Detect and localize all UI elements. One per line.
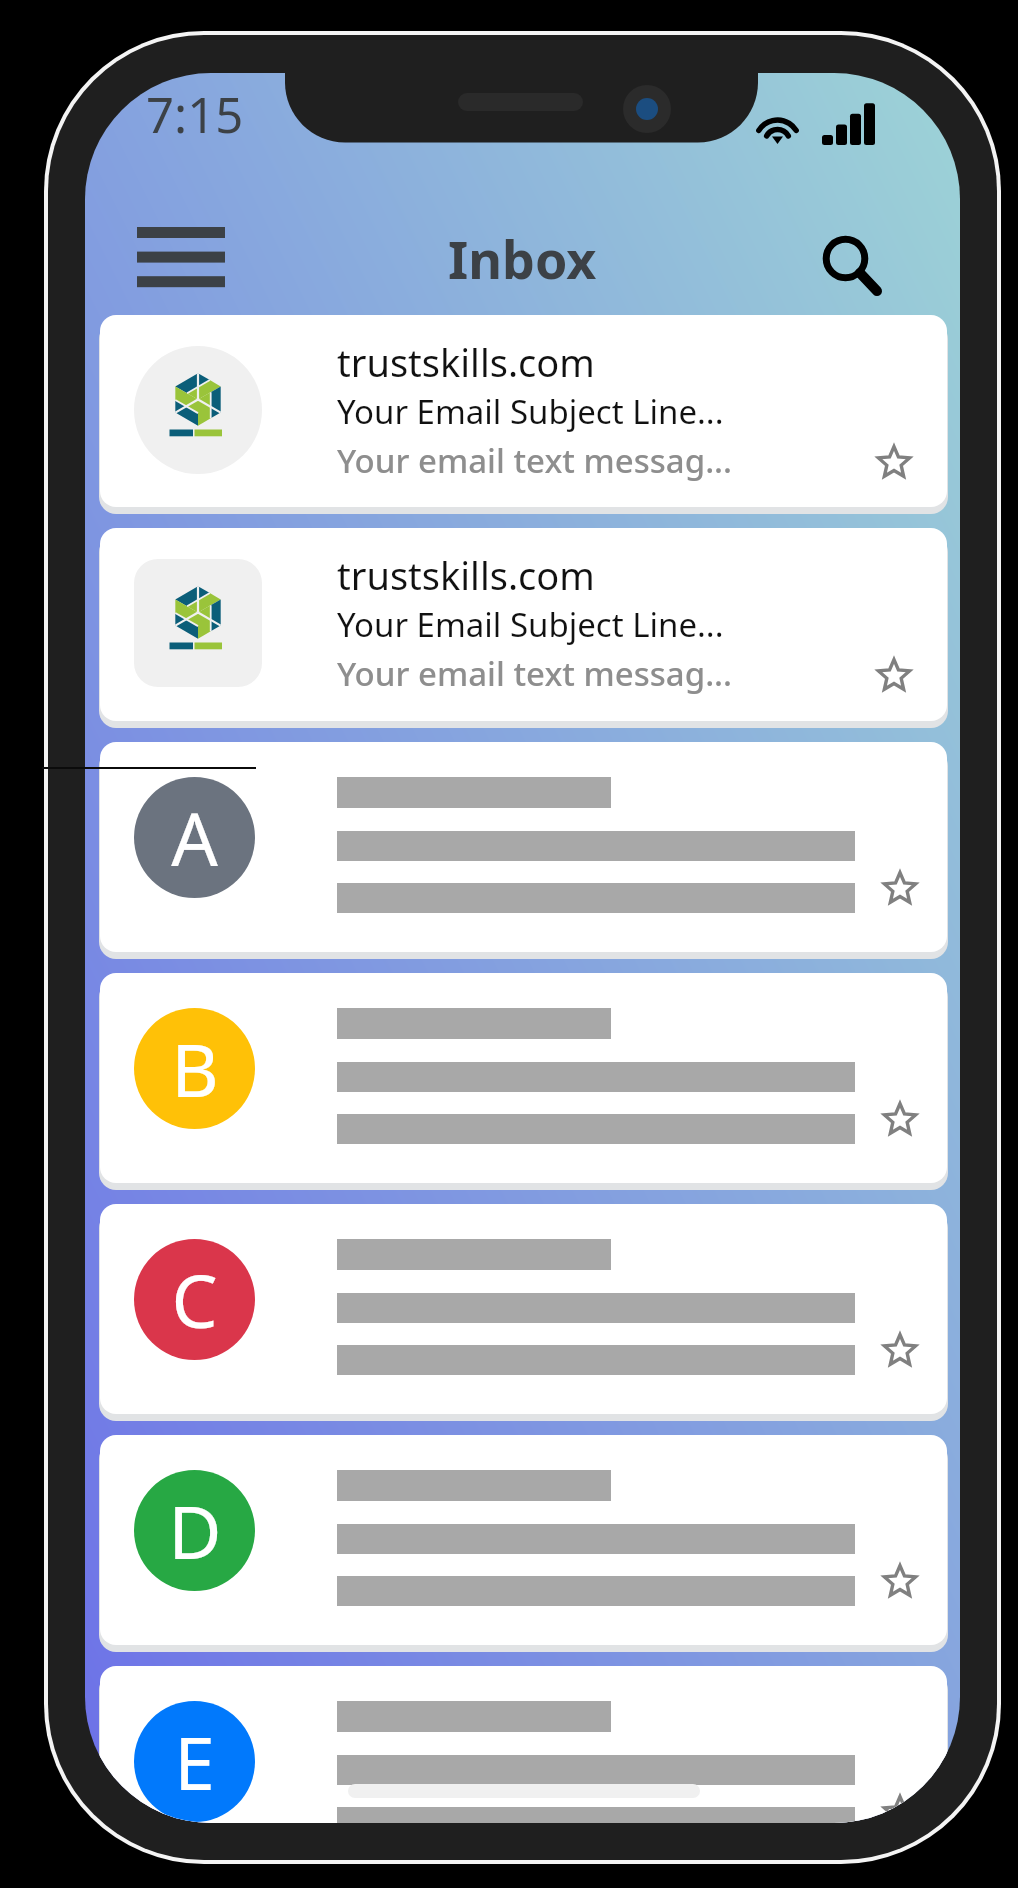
button[interactable]: D — [100, 1435, 947, 1645]
staticText: Inbox — [448, 223, 597, 294]
staticText: E — [174, 1712, 215, 1811]
button[interactable]: Star — [869, 1550, 931, 1612]
staticText: Your email text messag... — [337, 651, 733, 696]
staticText: C — [171, 1250, 218, 1349]
button[interactable]: Star — [863, 431, 925, 493]
button[interactable]: A — [100, 742, 947, 952]
button[interactable]: Menu — [121, 216, 241, 308]
button[interactable]: Search — [800, 212, 896, 308]
staticText: trustskills.com — [337, 549, 595, 601]
button[interactable]: Star — [863, 644, 925, 706]
button[interactable]: trustskills.com — [100, 528, 947, 721]
staticText: 7:15 — [146, 81, 244, 148]
button[interactable]: Star — [869, 857, 931, 919]
staticText: Your email text messag... — [337, 438, 733, 483]
button[interactable]: Star — [869, 1319, 931, 1381]
staticText: trustskills.com — [337, 336, 595, 388]
button[interactable]: C — [100, 1204, 947, 1414]
staticText: A — [171, 788, 218, 887]
staticText: Your Email Subject Line... — [337, 389, 724, 434]
staticText: B — [171, 1019, 219, 1118]
staticText: Your Email Subject Line... — [337, 602, 724, 647]
button[interactable]: trustskills.com — [100, 315, 947, 507]
staticText: D — [168, 1481, 222, 1580]
button[interactable]: E — [100, 1666, 947, 1823]
button[interactable]: B — [100, 973, 947, 1183]
button[interactable]: Star — [869, 1781, 931, 1823]
button[interactable]: Star — [869, 1088, 931, 1150]
